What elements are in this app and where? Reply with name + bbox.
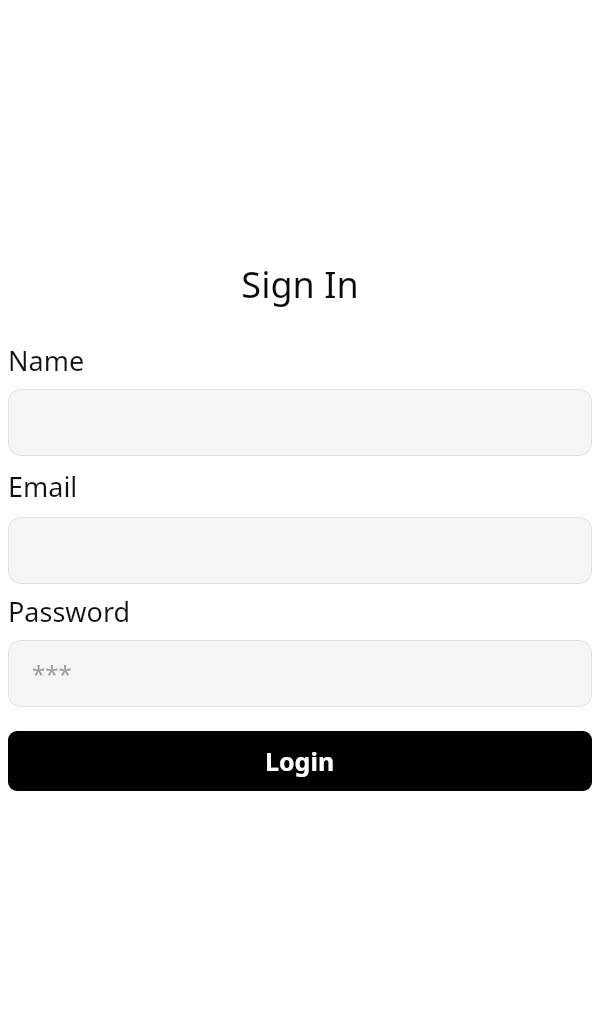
button[interactable]: [8, 517, 592, 584]
staticText: ***: [32, 657, 72, 690]
button[interactable]: Login: [8, 731, 592, 791]
button[interactable]: ***: [8, 640, 592, 707]
staticText: Name: [8, 342, 85, 379]
staticText: Email: [8, 468, 78, 505]
staticText: Sign In: [241, 260, 359, 309]
staticText: Login: [265, 744, 335, 778]
button[interactable]: [8, 389, 592, 456]
staticText: Password: [8, 593, 131, 630]
